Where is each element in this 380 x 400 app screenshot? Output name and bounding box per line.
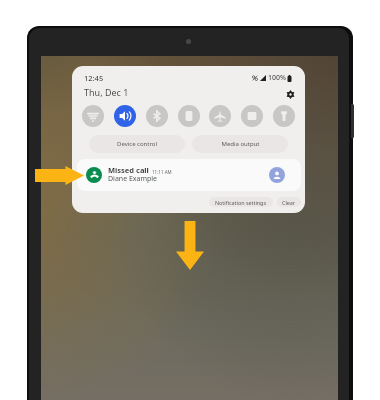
staticText: Missed call <box>108 165 149 175</box>
staticText: Notification settings <box>215 199 267 206</box>
button[interactable]: Notification settings <box>209 197 273 207</box>
staticText: 100% <box>268 73 286 83</box>
staticText: Diane Example <box>108 174 158 184</box>
button[interactable]: Clear <box>277 197 301 207</box>
button[interactable]: Smart View <box>241 105 263 127</box>
staticText: Clear <box>282 199 296 206</box>
button[interactable]: Missed call <box>77 159 301 191</box>
staticText: Device control <box>117 140 157 148</box>
button[interactable]: Settings <box>284 88 297 101</box>
button[interactable]: Flashlight <box>273 105 295 127</box>
button[interactable]: Media output <box>192 135 288 153</box>
staticText: 11:11 AM <box>152 169 172 175</box>
staticText: 12:45 <box>84 73 104 83</box>
button[interactable]: Device control <box>89 135 185 153</box>
button[interactable]: Airplane mode <box>209 105 231 127</box>
staticText: Media output <box>221 140 260 148</box>
button[interactable]: Wi-Fi <box>82 105 104 127</box>
staticText: Thu, Dec 1 <box>84 86 129 98</box>
button[interactable]: Sound <box>114 105 136 127</box>
button[interactable]: Auto rotate <box>178 105 200 127</box>
button[interactable]: Bluetooth <box>146 105 168 127</box>
